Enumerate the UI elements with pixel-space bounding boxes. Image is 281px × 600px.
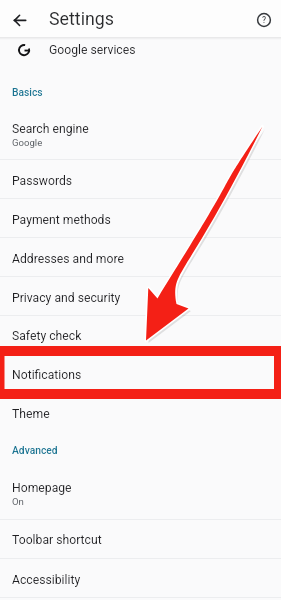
staticText: Google services (49, 43, 136, 57)
staticText: Search engine (12, 122, 89, 136)
staticText: Payment methods (12, 213, 111, 227)
staticText: Toolbar shortcut (12, 533, 102, 547)
staticText: Accessibility (12, 573, 81, 587)
button[interactable]: Homepage (0, 467, 281, 520)
staticText: Safety check (12, 329, 82, 343)
button[interactable]: Help and feedback (248, 4, 280, 36)
button[interactable]: Passwords (0, 160, 281, 199)
staticText: Google (12, 137, 43, 148)
staticText: Homepage (12, 481, 72, 495)
staticText: Notifications (12, 368, 82, 382)
staticText: Basics (12, 86, 43, 98)
button[interactable]: Google services (0, 39, 281, 63)
staticText: Theme (12, 407, 50, 421)
button[interactable]: Search engine (0, 98, 281, 160)
staticText: ? (262, 15, 267, 25)
button[interactable]: Navigate up (0, 1, 36, 37)
staticText: Privacy and security (12, 291, 121, 305)
button[interactable]: Accessibility (0, 559, 281, 598)
staticText: Addresses and more (12, 252, 124, 266)
button[interactable]: Addresses and more (0, 238, 281, 277)
button[interactable]: Safety check (0, 315, 281, 354)
button[interactable]: Toolbar shortcut (0, 520, 281, 559)
button[interactable]: Payment methods (0, 199, 281, 238)
staticText: Settings (49, 8, 114, 29)
staticText: Advanced (12, 444, 58, 456)
staticText: On (12, 496, 24, 507)
button[interactable]: Privacy and security (0, 277, 281, 316)
button[interactable]: Notifications (0, 354, 281, 393)
staticText: Passwords (12, 174, 73, 188)
button[interactable]: Theme (0, 393, 281, 432)
